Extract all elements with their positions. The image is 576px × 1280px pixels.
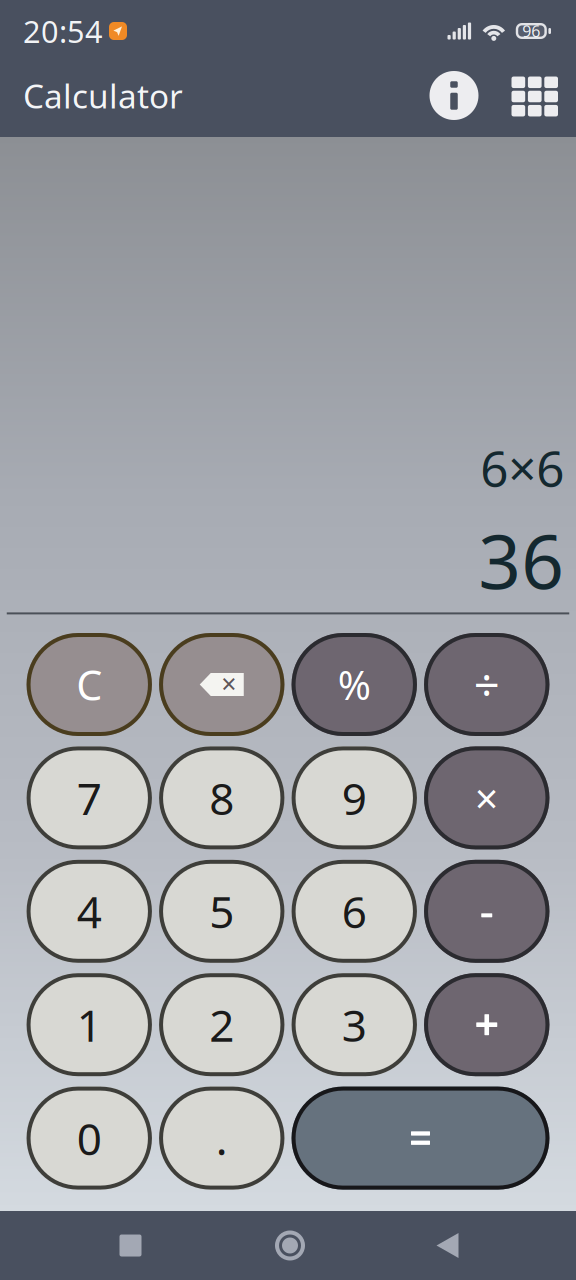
- button[interactable]: %: [292, 633, 417, 736]
- button[interactable]: 7: [27, 746, 152, 849]
- button[interactable]: 6: [292, 860, 417, 963]
- button[interactable]: 1: [27, 973, 152, 1076]
- staticText: 7: [77, 769, 102, 827]
- button[interactable]: ÷: [424, 633, 549, 736]
- staticText: .: [216, 1109, 228, 1167]
- staticText: Calculator: [23, 73, 183, 118]
- staticText: 3: [342, 995, 367, 1054]
- staticText: 8: [209, 769, 234, 827]
- button[interactable]: 3: [292, 973, 417, 1076]
- button[interactable]: 5: [159, 860, 284, 963]
- staticText: 1: [77, 995, 102, 1054]
- button[interactable]: Backspace: [159, 633, 284, 736]
- staticText: %: [338, 658, 371, 711]
- button[interactable]: Info: [421, 66, 486, 133]
- button[interactable]: 9: [292, 746, 417, 849]
- button[interactable]: Menu: [503, 66, 566, 132]
- staticText: 20:54: [23, 11, 103, 51]
- button[interactable]: .: [159, 1087, 284, 1190]
- button[interactable]: ×: [424, 746, 549, 849]
- button[interactable]: 0: [26, 1087, 152, 1190]
- staticText: ×: [221, 666, 236, 701]
- staticText: 2: [209, 995, 234, 1054]
- button[interactable]: C: [27, 633, 152, 736]
- staticText: 36: [478, 510, 564, 609]
- staticText: 9: [342, 769, 367, 827]
- button[interactable]: 2: [159, 973, 284, 1076]
- staticText: 96: [522, 20, 540, 42]
- staticText: 4: [77, 882, 102, 940]
- button[interactable]: Minus: [424, 860, 549, 963]
- staticText: 5: [209, 882, 234, 940]
- staticText: 6×6: [480, 435, 564, 500]
- staticText: ×: [475, 770, 499, 825]
- button[interactable]: Plus: [424, 973, 549, 1076]
- button[interactable]: 4: [27, 860, 152, 963]
- button[interactable]: Back: [420, 1217, 474, 1274]
- button[interactable]: Equals: [291, 1087, 549, 1190]
- staticText: ÷: [474, 654, 500, 715]
- staticText: C: [76, 657, 102, 712]
- button[interactable]: Home: [261, 1216, 319, 1274]
- staticText: 0: [77, 1109, 102, 1167]
- button[interactable]: 8: [159, 746, 284, 849]
- staticText: 6: [342, 882, 367, 940]
- button[interactable]: Recents: [101, 1216, 159, 1274]
